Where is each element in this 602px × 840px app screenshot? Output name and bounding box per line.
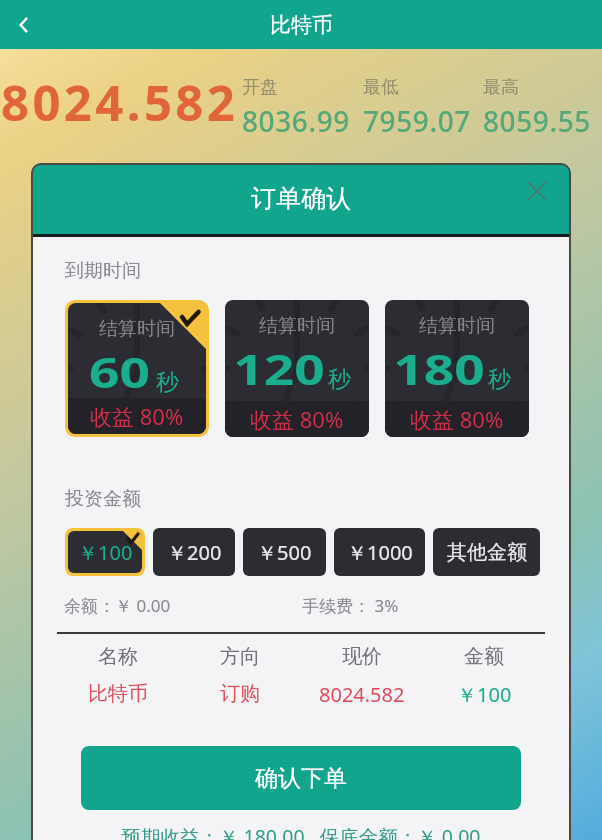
staticText: 60: [89, 344, 150, 400]
staticText: ￥1000: [347, 539, 413, 566]
button[interactable]: 确认下单: [81, 746, 521, 810]
staticText: 秒: [156, 368, 179, 397]
button[interactable]: Close: [519, 173, 555, 209]
button[interactable]: ￥1000: [334, 528, 425, 576]
staticText: 方向: [220, 644, 260, 669]
staticText: 订购: [220, 681, 260, 706]
staticText: 8036.99: [242, 102, 350, 140]
staticText: 收益 80%: [250, 404, 344, 434]
staticText: 收益 80%: [410, 404, 504, 434]
button[interactable]: 结算时间: [68, 303, 206, 434]
staticText: 结算时间: [259, 314, 335, 338]
staticText: 现价: [342, 644, 382, 669]
button[interactable]: 结算时间: [385, 300, 529, 437]
button[interactable]: ￥500: [243, 528, 326, 576]
staticText: 金额: [464, 644, 504, 669]
staticText: 7959.07: [363, 102, 471, 140]
staticText: 到期时间: [65, 259, 141, 283]
staticText: 其他金额: [447, 540, 527, 565]
staticText: ￥100: [78, 539, 133, 566]
staticText: 8024.582: [1, 69, 239, 136]
staticText: 120: [233, 341, 326, 397]
staticText: 比特币: [270, 12, 333, 38]
button[interactable]: ￥200: [153, 528, 235, 576]
staticText: 名称: [98, 644, 138, 669]
staticText: 秒: [488, 365, 511, 394]
staticText: 开盘: [242, 76, 278, 99]
staticText: 订单确认: [251, 183, 351, 214]
staticText: 确认下单: [255, 764, 347, 793]
button[interactable]: 结算时间: [225, 300, 369, 437]
staticText: 比特币: [88, 681, 148, 706]
staticText: 投资金额: [65, 487, 141, 511]
staticText: 8059.55: [483, 102, 591, 140]
staticText: ￥100: [457, 681, 512, 708]
staticText: ￥200: [167, 539, 222, 566]
staticText: 结算时间: [419, 314, 495, 338]
button[interactable]: ￥100: [68, 531, 142, 573]
staticText: 秒: [328, 365, 351, 394]
staticText: ￥500: [257, 539, 312, 566]
button[interactable]: 其他金额: [433, 528, 540, 576]
staticText: 收益 80%: [90, 401, 184, 431]
staticText: 余额：￥ 0.00: [64, 594, 171, 617]
staticText: 预期收益：￥ 180.00 保底金额：￥ 0.00: [57, 823, 545, 840]
staticText: 手续费： 3%: [302, 594, 399, 617]
staticText: 最高: [483, 76, 519, 99]
staticText: 结算时间: [99, 317, 175, 341]
staticText: 180: [393, 341, 486, 397]
staticText: 8024.582: [319, 681, 405, 708]
staticText: 最低: [363, 76, 399, 99]
button[interactable]: Back: [0, 1, 48, 49]
